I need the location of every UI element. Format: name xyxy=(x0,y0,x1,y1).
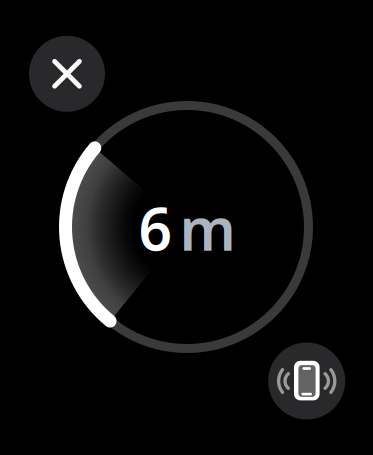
button[interactable]: Ping iPhone xyxy=(0,0,373,455)
staticText: 6 xyxy=(138,189,172,267)
staticText: m xyxy=(179,189,235,267)
button[interactable]: Close xyxy=(0,0,373,455)
